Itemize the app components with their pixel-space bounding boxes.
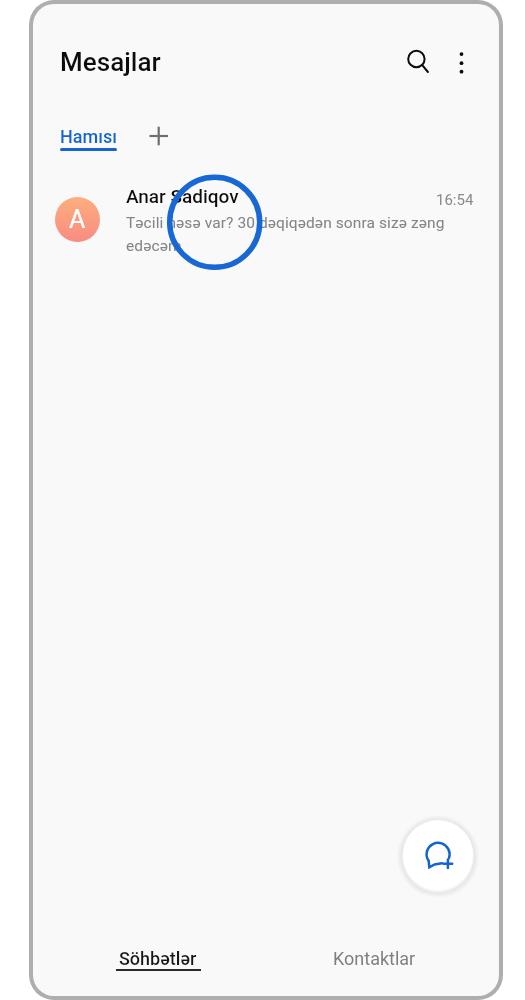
staticText: Kontaktlar [333, 948, 416, 969]
button[interactable] [140, 117, 178, 155]
button[interactable]: Hamısı [52, 114, 126, 160]
button[interactable] [398, 40, 436, 78]
staticText: Hamısı [60, 126, 117, 147]
staticText: Təcili nəsə var? 30 dəqiqədən sonra sizə… [126, 214, 445, 232]
staticText: edəcəm [126, 237, 182, 255]
staticText: Mesajlar [60, 47, 161, 77]
staticText: Söhbətlər [119, 948, 197, 969]
button[interactable]: A [40, 180, 492, 272]
staticText: A [69, 205, 86, 234]
button[interactable]: Söhbətlər [40, 933, 266, 991]
button[interactable] [398, 815, 478, 895]
button[interactable]: Kontaktlar [266, 933, 492, 991]
staticText: Anar Sadiqov [126, 185, 239, 207]
staticText: 16:54 [436, 191, 474, 209]
button[interactable] [446, 42, 478, 74]
